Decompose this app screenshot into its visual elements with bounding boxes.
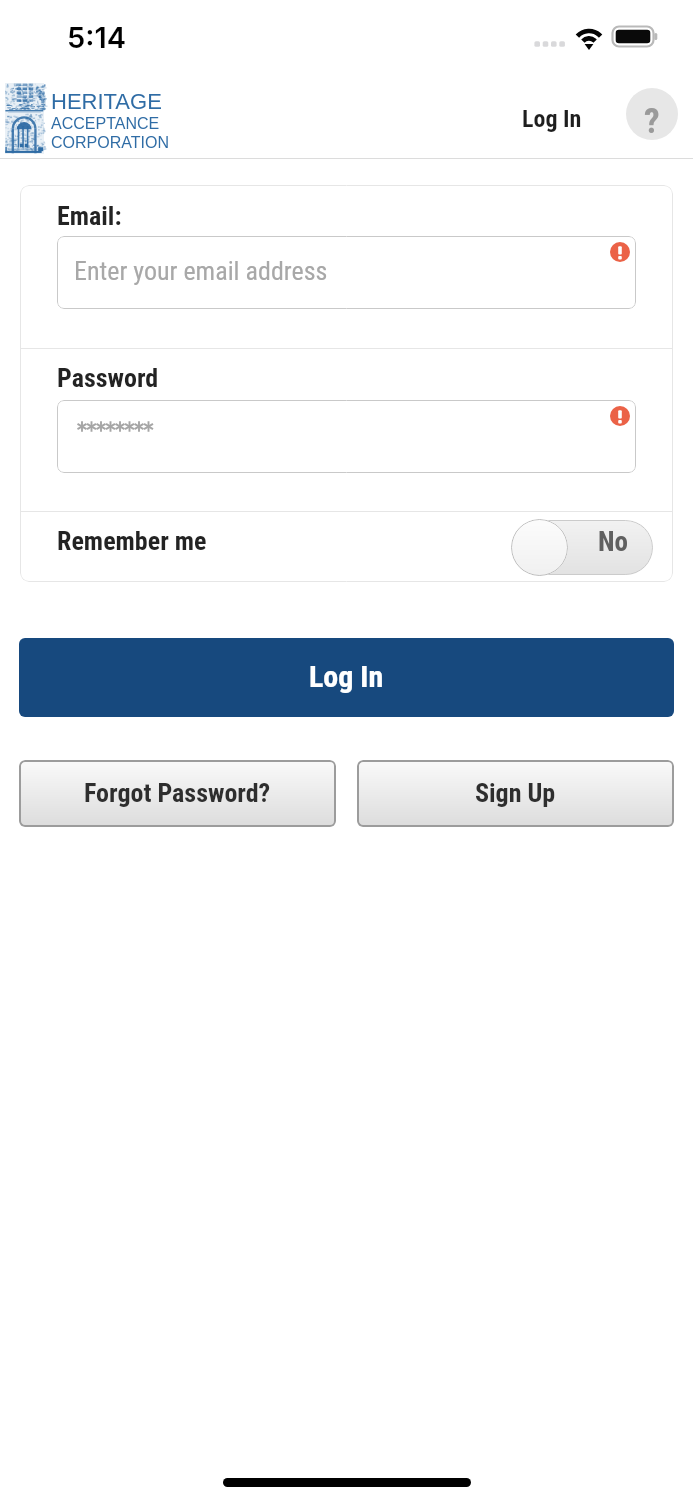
staticText: CORPORATION (51, 134, 169, 152)
staticText: HERITAGE (51, 89, 162, 114)
button[interactable]: Log In (19, 638, 674, 717)
staticText: No (598, 526, 628, 558)
staticText: Log In (522, 105, 582, 133)
staticText: ACCEPTANCE (51, 115, 160, 133)
button[interactable] (57, 400, 636, 473)
staticText: Password (57, 363, 159, 393)
staticText: Log In (309, 659, 384, 694)
staticText: Forgot Password? (84, 778, 271, 808)
button[interactable]: Enter your email address (57, 236, 636, 309)
staticText: ? (644, 101, 660, 140)
button[interactable]: Forgot Password? (19, 760, 336, 827)
button[interactable]: Remember me toggle (512, 519, 653, 576)
button[interactable]: Help (626, 88, 678, 140)
staticText: Email: (57, 201, 122, 231)
button[interactable]: Log In (510, 95, 594, 143)
staticText: Sign Up (475, 778, 556, 808)
staticText: 5:14 (67, 20, 127, 55)
button[interactable]: Sign Up (357, 760, 674, 827)
staticText: Enter your email address (74, 256, 328, 286)
staticText: Remember me (57, 526, 207, 556)
